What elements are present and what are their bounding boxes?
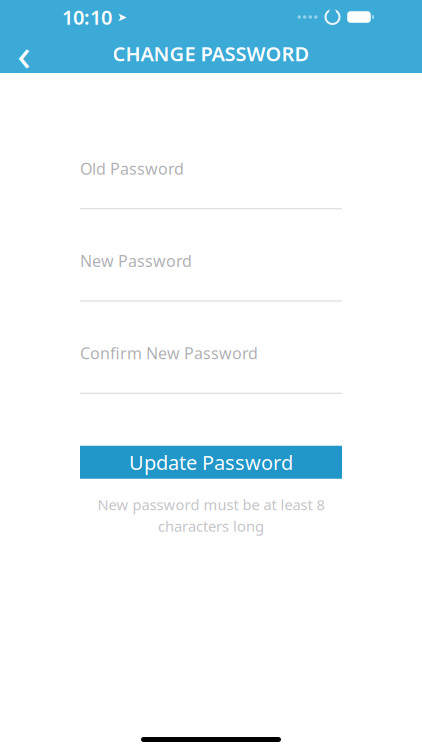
- button[interactable]: Update Password: [80, 446, 342, 479]
- staticText: ➤: [117, 10, 127, 24]
- staticText: Old Password: [80, 158, 184, 179]
- staticText: characters long: [158, 516, 264, 536]
- staticText: New password must be at least 8: [97, 495, 324, 514]
- staticText: ‹: [17, 23, 31, 84]
- staticText: 10:10: [62, 4, 112, 30]
- staticText: CHANGE PASSWORD: [112, 40, 309, 67]
- button[interactable]: Back: [0, 34, 48, 73]
- staticText: Update Password: [129, 449, 293, 476]
- staticText: New Password: [80, 250, 192, 271]
- staticText: Confirm New Password: [80, 342, 258, 364]
